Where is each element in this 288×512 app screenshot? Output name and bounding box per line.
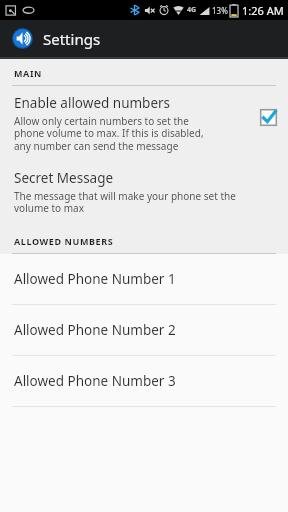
staticText: 4G (187, 5, 197, 15)
staticText: 1:26 AM (242, 3, 284, 18)
button[interactable]: Allowed Phone Number 2 (0, 305, 288, 355)
button[interactable]: Allowed Phone Number 3 (0, 356, 288, 406)
button[interactable]: Secret Message (0, 162, 288, 223)
button[interactable]: Allowed Phone Number 1 (0, 254, 288, 304)
staticText: Secret Message (14, 169, 114, 187)
staticText: Allowed Phone Number 3 (14, 372, 176, 390)
staticText: MAIN (14, 67, 42, 79)
staticText: ALLOWED NUMBERS (14, 235, 114, 247)
staticText: Allow only certain numbers to set the ph… (14, 114, 204, 153)
staticText: Enable allowed numbers (14, 94, 171, 112)
staticText: Settings (43, 29, 101, 49)
button[interactable]: Enable allowed numbers (0, 86, 288, 162)
staticText: Allowed Phone Number 1 (14, 270, 176, 288)
staticText: The message that will make your phone se… (14, 189, 236, 215)
staticText: 13% (212, 5, 228, 16)
button[interactable]: Enable allowed numbers checkbox (259, 108, 278, 127)
staticText: Allowed Phone Number 2 (14, 321, 176, 339)
